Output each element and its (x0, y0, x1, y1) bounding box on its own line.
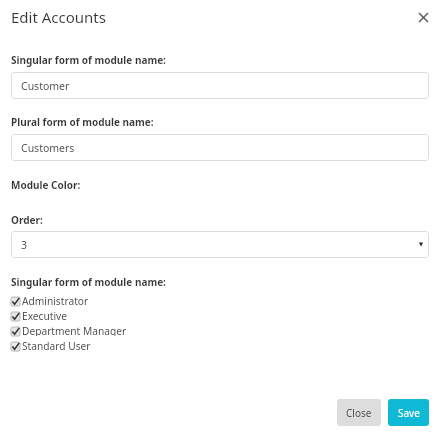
button[interactable]: Standard User (11, 340, 211, 352)
staticText: Executive (22, 309, 68, 321)
staticText: Close (346, 406, 372, 420)
staticText: Customers (21, 141, 75, 155)
staticText: Administrator (22, 294, 89, 306)
staticText: 3 (21, 238, 28, 252)
staticText: Singular form of module name: (11, 275, 166, 289)
button[interactable]: Close (415, 9, 431, 25)
button[interactable]: Customer (11, 72, 429, 99)
staticText: Standard User (22, 339, 91, 351)
button[interactable]: Department Manager (11, 325, 211, 337)
button[interactable]: Executive (11, 310, 211, 322)
button[interactable]: Save (388, 399, 429, 426)
button[interactable]: 3 (11, 231, 429, 258)
staticText: Module Color: (11, 178, 81, 192)
staticText: Singular form of module name: (11, 53, 166, 67)
button[interactable]: Administrator (11, 295, 211, 307)
staticText: Save (398, 406, 420, 420)
staticText: Customer (21, 79, 70, 93)
staticText: Order: (11, 213, 43, 227)
button[interactable]: Customers (11, 134, 429, 161)
staticText: Edit Accounts (11, 7, 106, 27)
button[interactable]: Close (337, 399, 381, 426)
staticText: Plural form of module name: (11, 115, 154, 129)
staticText: Department Manager (22, 324, 127, 336)
